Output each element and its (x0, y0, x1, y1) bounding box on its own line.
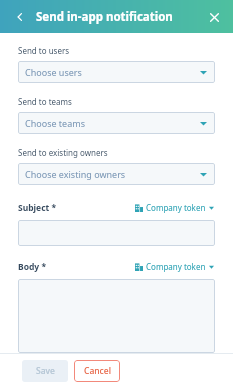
staticText: Choose teams (25, 117, 200, 129)
staticText: Company token (146, 202, 206, 213)
button[interactable] (18, 220, 215, 246)
staticText: Send to users (18, 45, 70, 56)
button[interactable] (18, 279, 215, 353)
staticText: Company token (146, 261, 206, 272)
button[interactable]: Company token (134, 260, 215, 273)
button[interactable]: Choose teams (18, 112, 215, 134)
button[interactable]: Cancel (74, 360, 120, 382)
button[interactable]: Save (22, 360, 68, 382)
button[interactable]: Back (10, 7, 30, 27)
staticText: Choose users (25, 66, 200, 78)
staticText: Choose existing owners (25, 168, 200, 180)
staticText: Send to existing owners (18, 147, 108, 158)
button[interactable]: Choose existing owners (18, 163, 215, 185)
button[interactable]: Company token (134, 201, 215, 214)
staticText: Body * (18, 261, 134, 273)
staticText: Send in-app notification (36, 9, 173, 25)
staticText: Save (36, 365, 55, 377)
button[interactable]: Choose users (18, 61, 215, 83)
staticText: Send to teams (18, 96, 72, 107)
staticText: Subject * (18, 202, 134, 214)
button[interactable]: Close (204, 7, 224, 27)
staticText: Cancel (84, 365, 111, 377)
